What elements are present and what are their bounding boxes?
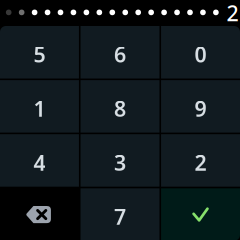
button[interactable]: Delete	[0, 188, 79, 240]
button[interactable]: 2	[161, 134, 240, 187]
staticText: 1	[33, 94, 45, 122]
staticText: 0	[194, 40, 206, 68]
staticText: 6	[114, 40, 126, 68]
button[interactable]: 9	[161, 80, 240, 133]
button[interactable]: 5	[0, 26, 79, 78]
button[interactable]: Confirm	[161, 188, 240, 240]
staticText: 2	[194, 148, 206, 177]
staticText: 9	[194, 94, 206, 122]
staticText: 8	[114, 94, 126, 122]
button[interactable]: 3	[80, 134, 159, 187]
staticText: 4	[33, 148, 45, 177]
button[interactable]: 1	[0, 80, 79, 133]
button[interactable]: 4	[0, 134, 79, 187]
staticText: 5	[33, 40, 45, 68]
button[interactable]: 0	[161, 26, 240, 78]
staticText: 7	[114, 202, 126, 231]
button[interactable]: 6	[80, 26, 159, 78]
button[interactable]: 7	[80, 188, 159, 240]
staticText: 3	[114, 148, 126, 177]
button[interactable]: 8	[80, 80, 159, 133]
staticText: 2	[226, 0, 238, 27]
